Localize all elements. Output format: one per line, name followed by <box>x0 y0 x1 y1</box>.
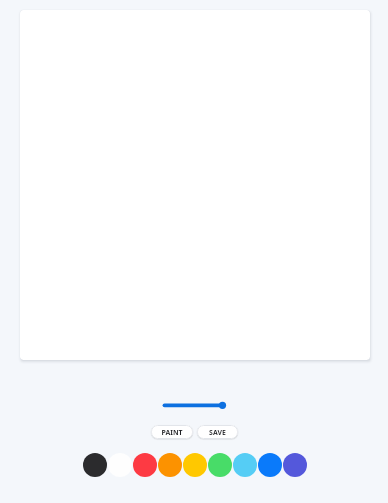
button[interactable]: PAINT <box>151 425 193 439</box>
button[interactable]: Brush size <box>155 395 233 415</box>
button[interactable]: Colour swatch <box>108 453 132 477</box>
button[interactable]: Colour swatch <box>158 453 182 477</box>
button[interactable]: Colour swatch <box>133 453 157 477</box>
button[interactable]: SAVE <box>197 425 238 439</box>
button[interactable]: Colour swatch <box>233 453 257 477</box>
button[interactable]: Colour swatch <box>258 453 282 477</box>
button[interactable]: Colour swatch <box>183 453 207 477</box>
button[interactable]: Colour swatch <box>283 453 307 477</box>
button[interactable]: Colour swatch <box>83 453 107 477</box>
staticText: PAINT <box>161 428 183 437</box>
button[interactable]: Colour swatch <box>208 453 232 477</box>
staticText: SAVE <box>209 428 226 437</box>
